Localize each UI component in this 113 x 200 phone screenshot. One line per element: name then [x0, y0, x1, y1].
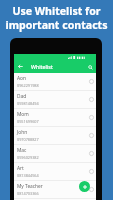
- button[interactable]: John: [14, 127, 96, 145]
- staticText: 0551699607: [17, 119, 39, 124]
- staticText: Art: [17, 165, 24, 172]
- staticText: John: [17, 129, 28, 136]
- button[interactable]: Art: [14, 163, 96, 181]
- button[interactable]: Mom: [14, 109, 96, 127]
- button[interactable]: Mac: [14, 145, 96, 163]
- button[interactable]: Search: [84, 61, 96, 73]
- staticText: Dad: [17, 93, 27, 100]
- button[interactable]: Add contact: [79, 181, 90, 192]
- staticText: 0598148494: [17, 101, 39, 106]
- staticText: 0813844564: [17, 173, 39, 178]
- staticText: Whitelist: [31, 63, 53, 70]
- staticText: My Teacher: [17, 183, 43, 190]
- button[interactable]: My Teacher: [14, 181, 96, 199]
- staticText: 0962291988: [17, 83, 39, 88]
- button[interactable]: Aon: [14, 73, 96, 91]
- staticText: Mac: [17, 147, 27, 154]
- staticText: 0970788827: [17, 137, 39, 142]
- staticText: 0814703366: [17, 191, 39, 196]
- staticText: Aon: [17, 75, 26, 82]
- staticText: Use Whitelist for: [12, 4, 101, 18]
- staticText: important contacts: [5, 18, 108, 32]
- staticText: Mom: [17, 111, 29, 118]
- staticText: 0596029382: [17, 155, 39, 160]
- button[interactable]: Dad: [14, 91, 96, 109]
- button[interactable]: Back: [14, 60, 27, 73]
